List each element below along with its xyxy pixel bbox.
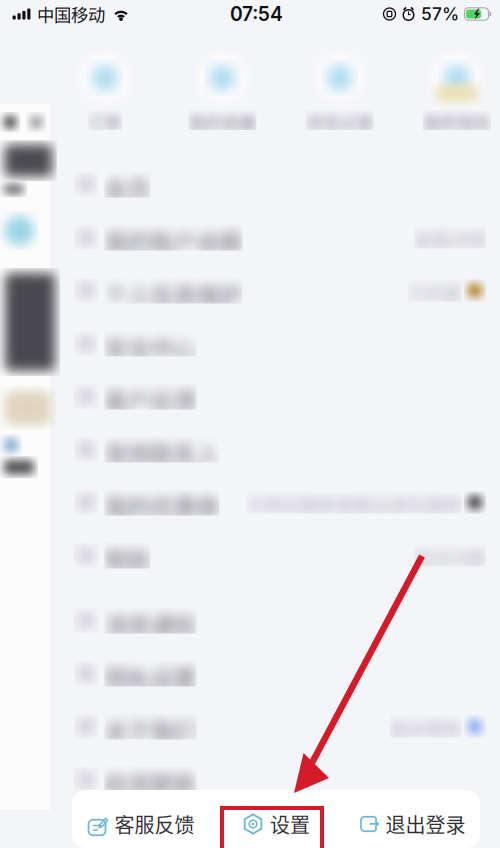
button[interactable]: 我的优惠券 (62, 476, 500, 529)
button[interactable]: 客服反馈 (72, 802, 208, 846)
staticText: 我的优惠券 (104, 530, 219, 564)
button[interactable]: 我的收藏 (181, 50, 263, 130)
button[interactable]: 关于我们 (62, 700, 500, 753)
staticText: 07:54 (230, 2, 283, 26)
button[interactable]: 订单 (64, 50, 146, 130)
staticText: 安全中心 (104, 371, 196, 405)
staticText: 我的账户余额 (104, 265, 242, 299)
button[interactable]: 安全中心 (62, 317, 500, 370)
staticText: 关于我们 (104, 754, 196, 788)
button[interactable]: 会员 (62, 158, 500, 211)
button[interactable]: 个人信息维护 (62, 264, 500, 317)
button[interactable]: 常用联系人 (62, 423, 500, 476)
button[interactable]: 帮助 (62, 529, 500, 582)
staticText: 查看详情 (414, 263, 486, 289)
staticText: 会员 (104, 212, 150, 246)
staticText: 隐私设置 (104, 701, 196, 735)
button[interactable]: 设置 (208, 802, 344, 846)
staticText: 消息通知 (104, 648, 196, 682)
staticText: 检测更新 (104, 807, 196, 841)
staticText: 退出登录 (385, 809, 465, 838)
button[interactable]: 我的钱包 (416, 50, 498, 130)
staticText: 客户反馈 (104, 424, 196, 458)
button[interactable]: 浏览记录 (299, 50, 381, 130)
staticText: 常用联系人 (104, 477, 219, 511)
staticText: 客服反馈 (114, 809, 194, 838)
staticText: 帮助 (104, 583, 150, 617)
staticText: 个人信息维护 (104, 318, 242, 352)
button[interactable]: 消息通知 (62, 594, 500, 647)
button[interactable]: 我的账户余额 (62, 211, 500, 264)
staticText: 57% (421, 3, 459, 24)
staticText: 中国移动 (37, 1, 105, 27)
button[interactable]: 检测更新 (62, 753, 500, 806)
button[interactable]: 退出登录 (344, 802, 480, 846)
button[interactable]: 隐私设置 (62, 647, 500, 700)
button[interactable]: 客户反馈 (62, 370, 500, 423)
staticText: 设置 (270, 809, 310, 838)
